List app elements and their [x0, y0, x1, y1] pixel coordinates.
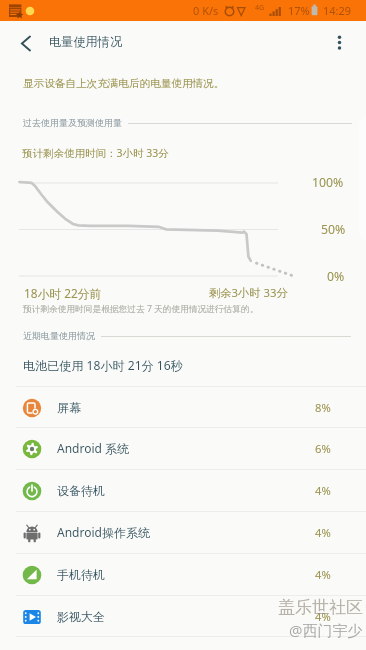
- button[interactable]: Back: [7, 26, 45, 60]
- button[interactable]: 屏幕: [0, 386, 366, 428]
- button[interactable]: More options: [322, 24, 356, 60]
- staticText: 4%: [315, 567, 331, 582]
- button[interactable]: 手机待机: [0, 553, 366, 595]
- staticText: 17%: [288, 3, 310, 18]
- staticText: 100%: [312, 174, 344, 191]
- staticText: 4%: [315, 525, 331, 540]
- staticText: 预计剩余使用时间是根据您过去 7 天的使用情况进行估算的。: [23, 303, 259, 315]
- staticText: 0%: [327, 268, 345, 285]
- button[interactable]: Android操作系统: [0, 511, 366, 553]
- staticText: 影视大全: [57, 609, 105, 624]
- button[interactable]: Android 系统: [0, 427, 366, 469]
- staticText: 剩余3小时 33分: [209, 285, 288, 300]
- staticText: 6%: [315, 441, 331, 456]
- staticText: 18小时 22分前: [24, 285, 102, 301]
- staticText: 4G: [255, 3, 265, 13]
- staticText: 手机待机: [57, 567, 105, 582]
- staticText: 设备待机: [57, 483, 105, 498]
- staticText: 盖乐世社区: [278, 597, 363, 618]
- staticText: 预计剩余使用时间：3小时 33分: [22, 146, 169, 160]
- staticText: 4%: [315, 483, 331, 498]
- staticText: 4%: [315, 609, 331, 624]
- staticText: 显示设备自上次充满电后的电量使用情况。: [23, 77, 225, 90]
- staticText: 8%: [315, 400, 331, 415]
- staticText: @西门宇少: [289, 620, 363, 640]
- staticText: 近期电量使用情况: [23, 330, 95, 341]
- staticText: 过去使用量及预测使用量: [23, 117, 122, 128]
- staticText: Android操作系统: [57, 524, 150, 540]
- staticText: 电量使用情况: [49, 34, 123, 49]
- button[interactable]: 影视大全: [0, 595, 366, 637]
- staticText: 14:29: [323, 3, 352, 18]
- staticText: 50%: [321, 221, 346, 238]
- button[interactable]: 设备待机: [0, 469, 366, 511]
- staticText: 0 K/s: [193, 3, 219, 18]
- staticText: 屏幕: [57, 400, 81, 415]
- staticText: 电池已使用 18小时 21分 16秒: [23, 357, 183, 374]
- staticText: Android 系统: [57, 440, 130, 456]
